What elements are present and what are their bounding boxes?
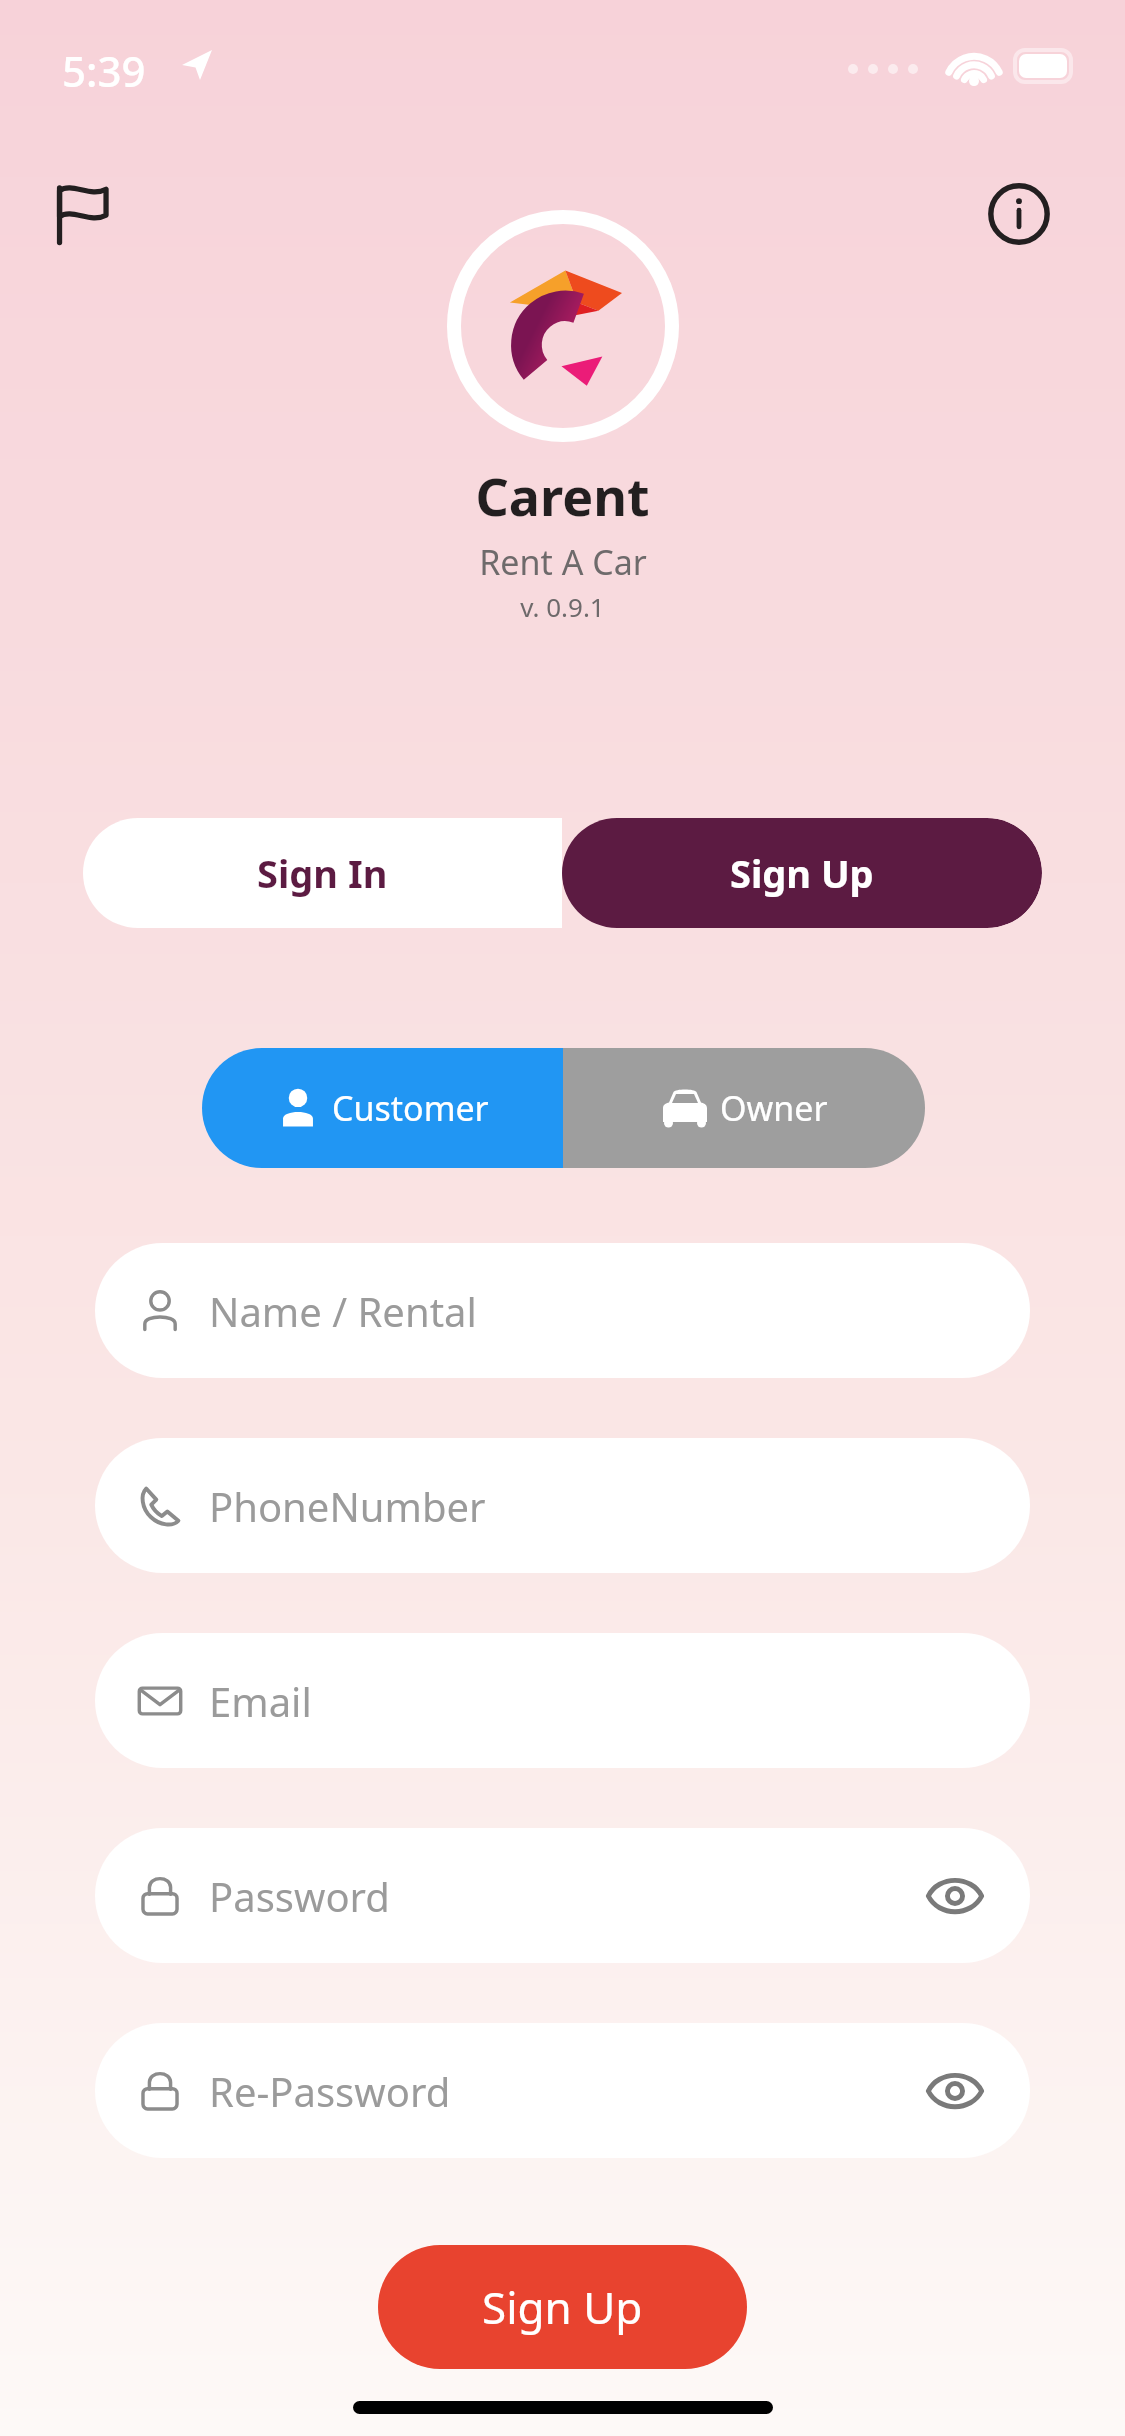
button[interactable]: Show password [920, 1861, 990, 1931]
button[interactable]: Sign Up [378, 2245, 747, 2369]
button[interactable]: Password [95, 1828, 1030, 1963]
button[interactable]: Email [95, 1633, 1030, 1768]
staticText: Carent [475, 460, 650, 531]
button[interactable]: Name / Rental [95, 1243, 1030, 1378]
staticText: v. 0.9.1 [520, 589, 605, 624]
staticText: Customer [332, 1085, 489, 1131]
button[interactable]: PhoneNumber [95, 1438, 1030, 1573]
button[interactable]: Re-Password [95, 2023, 1030, 2158]
button[interactable]: Flag [36, 170, 124, 258]
button[interactable]: Info [975, 170, 1063, 258]
staticText: Re-Password [209, 2064, 451, 2118]
button[interactable]: Customer [202, 1048, 563, 1168]
staticText: Email [209, 1674, 312, 1728]
staticText: Sign Up [730, 847, 874, 899]
staticText: Rent A Car [479, 539, 647, 585]
button[interactable]: Owner [563, 1048, 925, 1168]
button[interactable]: Sign Up [562, 818, 1042, 928]
staticText: 5:39 [62, 42, 146, 99]
button[interactable]: Show password [920, 2056, 990, 2126]
staticText: Password [209, 1869, 390, 1923]
staticText: PhoneNumber [209, 1479, 486, 1533]
staticText: Sign Up [482, 2277, 643, 2337]
staticText: Name / Rental [209, 1284, 477, 1338]
button[interactable]: Sign In [83, 818, 562, 928]
staticText: Sign In [257, 847, 388, 899]
staticText: Owner [720, 1085, 828, 1131]
